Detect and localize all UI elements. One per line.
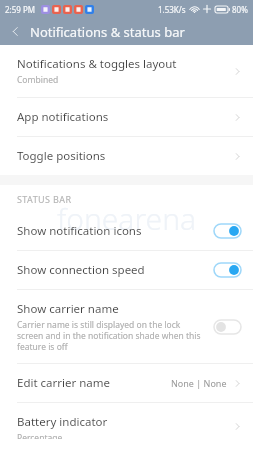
staticText: Show notification icons — [17, 223, 142, 239]
staticText: Show connection speed — [17, 262, 145, 278]
staticText: 80% — [232, 4, 248, 15]
button[interactable]: Back — [0, 18, 30, 45]
staticText: 1.53K/s — [158, 4, 186, 15]
button[interactable]: Notifications & toggles layout — [0, 45, 253, 97]
staticText: None | None — [171, 377, 227, 389]
staticText: Combined — [17, 74, 59, 86]
staticText: STATUS BAR — [17, 193, 72, 205]
button[interactable]: Battery indicator — [0, 403, 253, 450]
staticText: Percentage — [17, 432, 63, 439]
staticText: Notifications & toggles layout — [17, 56, 177, 72]
button[interactable]: App notifications — [0, 98, 253, 136]
staticText: fonearena — [0, 198, 253, 239]
button[interactable]: Show carrier name — [0, 290, 253, 363]
staticText: Toggle positions — [17, 148, 106, 164]
staticText: Carrier name is still displayed on the l… — [17, 319, 204, 352]
button[interactable]: Toggle on — [214, 224, 241, 238]
button[interactable]: Toggle off — [214, 320, 241, 334]
button[interactable]: Show notification icons — [0, 212, 253, 250]
staticText: 2:59 PM — [5, 4, 36, 15]
staticText: Notifications & status bar — [30, 23, 185, 41]
staticText: Edit carrier name — [17, 375, 111, 391]
staticText: Show carrier name — [17, 301, 119, 317]
button[interactable]: Toggle on — [214, 263, 241, 277]
button[interactable]: Toggle positions — [0, 137, 253, 175]
button[interactable]: Show connection speed — [0, 251, 253, 289]
button[interactable]: Edit carrier name — [0, 364, 253, 402]
staticText: App notifications — [17, 109, 109, 125]
staticText: Battery indicator — [17, 414, 108, 430]
